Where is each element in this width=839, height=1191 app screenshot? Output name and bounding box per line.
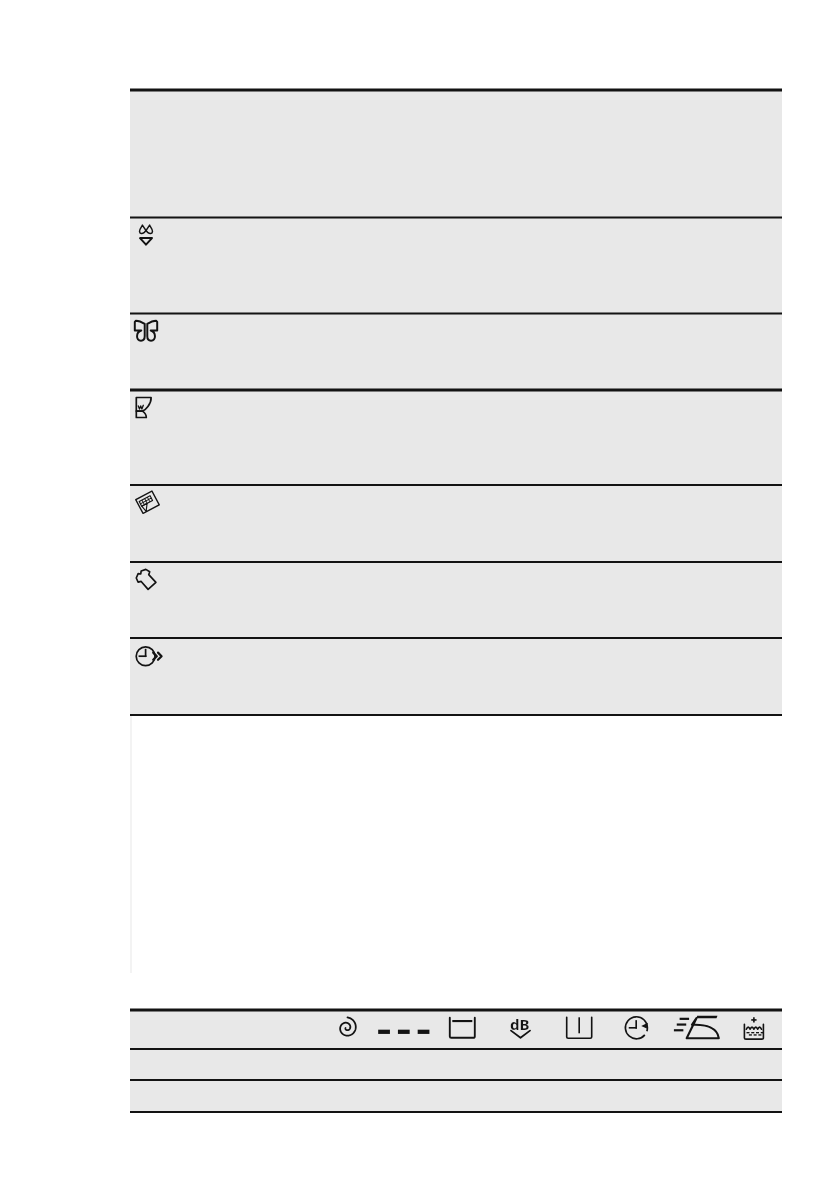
button[interactable]: Extra water [733, 1011, 773, 1048]
button[interactable]: Easy care [329, 1011, 369, 1048]
button[interactable]: Delicates programme [130, 217, 782, 313]
button[interactable]: Shirts programme [130, 562, 782, 638]
button[interactable]: Quick programme [130, 638, 782, 715]
button[interactable]: Steam iron [672, 1011, 724, 1048]
button[interactable]: Delay start [617, 1011, 657, 1048]
button[interactable]: Wool programme [130, 390, 782, 485]
button[interactable]: Duvet programme [130, 485, 782, 562]
button[interactable]: Pre-wash [385, 1011, 425, 1048]
button[interactable]: Wash [443, 1011, 483, 1048]
button[interactable]: Silk programme [130, 313, 782, 390]
staticText: dB [510, 1014, 530, 1034]
button[interactable]: Noise level in dB [501, 1011, 541, 1048]
button[interactable]: Spin speed [559, 1011, 599, 1048]
